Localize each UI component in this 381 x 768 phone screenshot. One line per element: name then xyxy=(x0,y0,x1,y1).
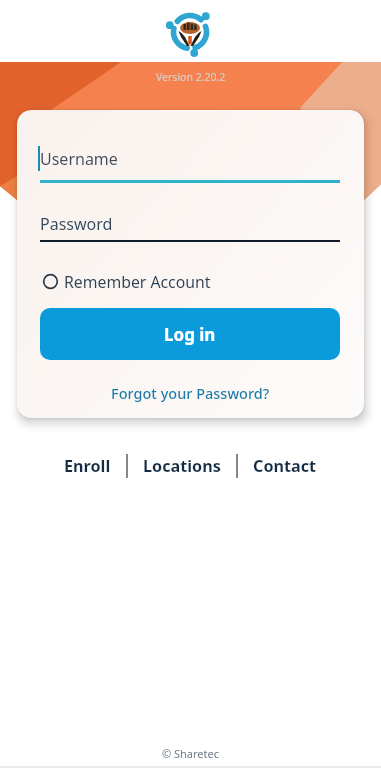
staticText: © Sharetec xyxy=(162,746,220,761)
staticText: Enroll xyxy=(64,455,111,477)
staticText: Password xyxy=(40,213,113,235)
staticText: Username xyxy=(40,148,118,170)
staticText: Forgot your Password? xyxy=(111,383,270,403)
staticText: Contact xyxy=(253,455,317,477)
staticText: Locations xyxy=(143,455,221,477)
staticText: Version 2.20.2 xyxy=(156,70,226,84)
button[interactable]: Contact xyxy=(253,455,317,477)
button[interactable]: Forgot your Password? xyxy=(17,382,364,404)
button[interactable]: Locations xyxy=(143,455,221,477)
button[interactable]: Log in xyxy=(40,308,340,360)
staticText: Log in xyxy=(164,323,216,346)
button[interactable]: Remember Account xyxy=(43,271,211,291)
button[interactable]: Username xyxy=(38,146,340,186)
staticText: Remember Account xyxy=(64,271,211,291)
button[interactable]: Enroll xyxy=(64,455,111,477)
button[interactable]: Password xyxy=(38,213,340,249)
